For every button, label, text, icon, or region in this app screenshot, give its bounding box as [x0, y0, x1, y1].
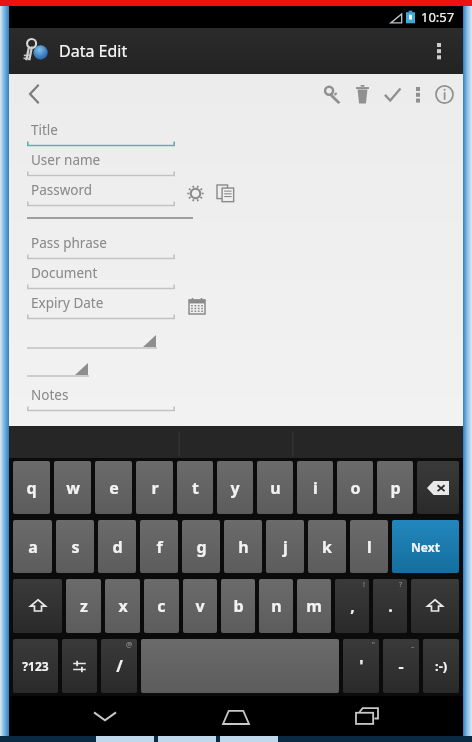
staticText: !	[363, 580, 365, 590]
staticText: ?123	[22, 658, 49, 674]
button[interactable]: g	[182, 520, 220, 573]
button[interactable]: y	[217, 461, 253, 514]
button[interactable]: t	[177, 461, 213, 514]
button[interactable]: h	[224, 520, 262, 573]
button[interactable]: Keyboard settings	[62, 639, 97, 693]
button[interactable]: x	[105, 579, 140, 633]
staticText: l	[367, 536, 372, 558]
button[interactable]: m	[297, 579, 331, 633]
button[interactable]: Delete	[347, 75, 377, 113]
button[interactable]: Shift	[411, 579, 459, 633]
button[interactable]: c	[144, 579, 179, 633]
button[interactable]: Pick date	[183, 292, 211, 320]
button[interactable]: Generate password	[317, 75, 347, 113]
button[interactable]: Hide keyboard	[70, 696, 140, 736]
staticText: y	[230, 477, 240, 499]
button[interactable]: Emoji	[423, 639, 459, 693]
button[interactable]: p	[377, 461, 413, 514]
staticText: Pass phrase	[31, 234, 107, 252]
button[interactable]: Document	[27, 261, 463, 291]
button[interactable]: Space	[141, 639, 339, 693]
button[interactable]: Recent apps	[332, 696, 402, 736]
button[interactable]: Pass phrase	[27, 231, 463, 261]
button[interactable]: Expiry Date	[27, 291, 463, 321]
staticText: Notes	[31, 386, 69, 404]
staticText: p	[390, 477, 401, 499]
button[interactable]: s	[56, 520, 94, 573]
button[interactable]: Password	[27, 178, 463, 208]
staticText: g	[196, 536, 207, 558]
button[interactable]: User name	[27, 148, 463, 178]
button[interactable]: !	[335, 579, 369, 633]
button[interactable]: Notes	[27, 383, 463, 413]
staticText: s	[71, 536, 80, 558]
staticText: x	[118, 595, 128, 617]
staticText: c	[157, 595, 166, 617]
button[interactable]: k	[308, 520, 346, 573]
staticText: m	[306, 595, 322, 617]
button[interactable]: r	[136, 461, 173, 514]
staticText: Data Edit	[59, 40, 128, 62]
button[interactable]: ?	[373, 579, 407, 633]
staticText: "	[372, 640, 375, 650]
staticText: ?	[399, 580, 403, 590]
staticText: -	[398, 655, 404, 677]
staticText: t	[192, 477, 199, 499]
button[interactable]: "	[343, 639, 379, 693]
button[interactable]: More options	[425, 31, 453, 71]
staticText: f	[156, 536, 163, 558]
button[interactable]: Shift	[13, 579, 62, 633]
staticText: o	[350, 477, 361, 499]
button[interactable]: More options	[407, 75, 429, 113]
button[interactable]: v	[183, 579, 217, 633]
button[interactable]: _	[383, 639, 419, 693]
button[interactable]: u	[257, 461, 293, 514]
button[interactable]: Generate	[181, 179, 209, 207]
staticText: ,	[350, 595, 355, 617]
button[interactable]: Information	[429, 75, 459, 113]
staticText: 10:57	[421, 8, 455, 26]
staticText: q	[26, 477, 37, 499]
button[interactable]: Title	[27, 118, 463, 148]
button[interactable]: z	[66, 579, 101, 633]
button[interactable]: Next	[392, 520, 459, 573]
button[interactable]: b	[221, 579, 255, 633]
button[interactable]: Backspace	[417, 461, 459, 514]
button[interactable]: @	[101, 639, 137, 693]
staticText: /	[116, 655, 123, 677]
button[interactable]: j	[266, 520, 304, 573]
button[interactable]: Home	[201, 696, 271, 736]
button[interactable]: d	[98, 520, 136, 573]
staticText: h	[238, 536, 249, 558]
staticText: v	[195, 595, 205, 617]
button[interactable]: f	[140, 520, 178, 573]
staticText: k	[322, 536, 332, 558]
staticText: i	[313, 477, 318, 499]
staticText: n	[271, 595, 282, 617]
button[interactable]: e	[95, 461, 132, 514]
staticText: d	[112, 536, 123, 558]
button[interactable]: Save	[377, 75, 407, 113]
button[interactable]: n	[259, 579, 293, 633]
button[interactable]: a	[13, 520, 52, 573]
staticText: Document	[31, 264, 98, 282]
staticText: Next	[411, 539, 440, 555]
button[interactable]: l	[350, 520, 388, 573]
button[interactable]: w	[54, 461, 91, 514]
staticText: r	[151, 477, 159, 499]
staticText: .	[388, 595, 393, 617]
button[interactable]: o	[337, 461, 373, 514]
staticText: Password	[31, 181, 93, 199]
button[interactable]	[27, 353, 463, 381]
button[interactable]: i	[297, 461, 333, 514]
button[interactable]: Back	[17, 75, 51, 113]
staticText: Title	[31, 121, 58, 139]
staticText: User name	[31, 151, 101, 169]
button[interactable]: Copy	[211, 179, 239, 207]
staticText: a	[28, 536, 38, 558]
staticText: @	[126, 640, 133, 650]
button[interactable]: ?123	[13, 639, 58, 693]
button[interactable]	[27, 325, 463, 353]
staticText: w	[66, 477, 80, 499]
button[interactable]: q	[13, 461, 50, 514]
